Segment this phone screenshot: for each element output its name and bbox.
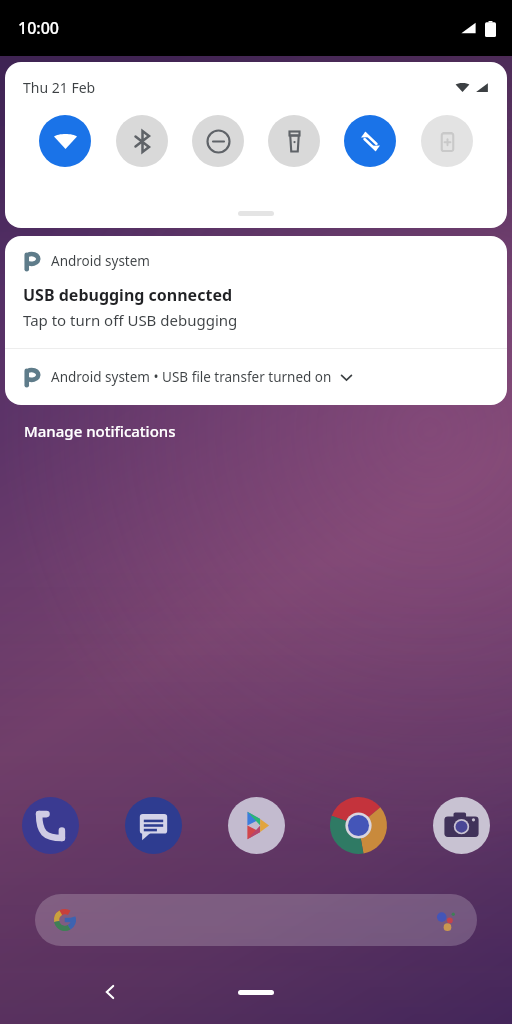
button[interactable]: Chrome (330, 797, 387, 854)
button[interactable]: Thu 21 Feb (23, 78, 96, 97)
button[interactable]: Camera (433, 797, 490, 854)
button[interactable]: Phone (22, 797, 79, 854)
staticText: USB debugging connected (23, 284, 233, 306)
button[interactable]: Battery Saver (421, 115, 473, 167)
button[interactable]: Do not disturb (192, 115, 244, 167)
button[interactable]: Wi-Fi (39, 115, 91, 167)
button[interactable]: Flashlight (268, 115, 320, 167)
button[interactable]: Home (238, 990, 274, 995)
button[interactable]: Manage notifications (24, 421, 176, 441)
button[interactable]: Messages (125, 797, 182, 854)
button[interactable]: Play Store (228, 797, 285, 854)
button[interactable]: Android system (5, 236, 507, 348)
button[interactable]: Android system • USB file transfer turne… (5, 349, 507, 405)
button[interactable]: Back (92, 974, 128, 1010)
staticText: 10:00 (18, 17, 59, 39)
button[interactable]: Expand quick settings (238, 211, 274, 216)
button[interactable]: Google search (35, 894, 477, 946)
staticText: Android system • USB file transfer turne… (51, 368, 332, 386)
button[interactable]: Auto-rotate (344, 115, 396, 167)
staticText: Tap to turn off USB debugging (23, 310, 238, 330)
button[interactable]: Bluetooth (116, 115, 168, 167)
staticText: Android system (51, 252, 150, 270)
